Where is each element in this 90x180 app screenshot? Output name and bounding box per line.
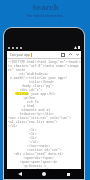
staticText: Can your app xyxy=(10,53,30,57)
button[interactable]: Back xyxy=(16,170,24,178)
button[interactable]: Next result xyxy=(76,53,79,56)
staticText: tributes</p></div> xyxy=(8,112,54,116)
staticText: nt="width=devic xyxy=(8,72,49,76)
staticText: r html xyxy=(8,104,35,108)
staticText: <!DOCTYPE html><html lang="en"><head><me xyxy=(8,60,81,64)
staticText: ontainer</p></div> xyxy=(8,168,54,169)
staticText: ta charset="utf-8"><meta name="viewpo xyxy=(8,64,79,68)
button[interactable]: Home xyxy=(40,170,48,178)
staticText: e-width"><title>Can your app</ xyxy=(8,76,68,80)
staticText: </nav><main> xyxy=(8,144,51,148)
button[interactable]: Previous result xyxy=(69,53,72,56)
staticText: rch fo xyxy=(8,100,39,104)
staticText: <p>Generic c xyxy=(8,164,47,168)
staticText: <span>div</span> xyxy=(8,156,54,160)
staticText: <li> xyxy=(8,136,37,140)
button[interactable]: Select xyxy=(61,53,65,57)
staticText: <h1>Can your app</h1> xyxy=(8,92,56,96)
staticText: title></head> xyxy=(8,80,54,84)
staticText: <span>span</span><b> xyxy=(8,160,58,164)
staticText: <body class="pg"> xyxy=(8,84,54,88)
staticText: <ul class="nav-list menu"> xyxy=(8,120,58,124)
staticText: for html elements xyxy=(27,13,63,18)
staticText: <div class="card" data-el> xyxy=(8,152,64,156)
staticText: <div id="r"> xyxy=(8,88,43,92)
staticText: </ul> xyxy=(8,124,18,128)
staticText: <li> xyxy=(8,132,37,136)
staticText: <li> xyxy=(8,128,37,132)
staticText: elements and at xyxy=(8,108,51,112)
staticText: </ul> xyxy=(8,140,39,144)
button[interactable]: Recent apps xyxy=(64,170,72,178)
staticText: Search xyxy=(32,2,59,12)
staticText: <section id="res"> xyxy=(8,148,62,152)
staticText: rt" conte xyxy=(8,68,26,72)
staticText: <nav class="site-nav" role="nav"> xyxy=(8,116,72,120)
staticText: <p>Sea xyxy=(8,96,35,100)
